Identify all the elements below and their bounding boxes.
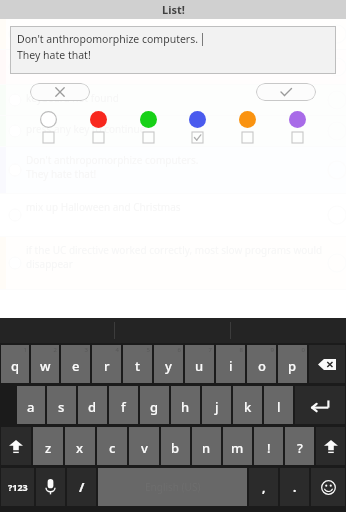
staticText: 6 — [177, 346, 181, 354]
staticText: 9 — [270, 346, 274, 354]
staticText: l — [277, 398, 281, 416]
button[interactable]: Shift — [316, 427, 345, 465]
staticText: , — [262, 479, 266, 495]
button[interactable]: 7 — [185, 345, 214, 383]
button[interactable]: Colour option 4 — [187, 111, 208, 143]
button[interactable]: c — [97, 427, 127, 465]
button[interactable]: s — [47, 386, 76, 424]
button[interactable]: 8 — [216, 345, 245, 383]
staticText: Don't anthropomorphize computers. — [17, 32, 199, 46]
staticText: o — [258, 357, 266, 375]
staticText: List! — [162, 2, 185, 17]
button[interactable]: v — [129, 427, 159, 465]
button[interactable]: 1 — [1, 345, 29, 383]
button[interactable]: 4 — [92, 345, 121, 383]
button[interactable]: f — [109, 386, 138, 424]
button[interactable]: Cancel — [30, 83, 90, 101]
staticText: d — [88, 398, 97, 416]
button[interactable]: k — [233, 386, 262, 424]
staticText: They hate that! — [17, 48, 91, 62]
button[interactable]: x — [65, 427, 95, 465]
button[interactable]: d — [78, 386, 107, 424]
staticText: c — [109, 439, 116, 457]
button[interactable]: j — [202, 386, 231, 424]
staticText: 0 — [301, 346, 305, 354]
staticText: t — [135, 357, 140, 375]
button[interactable]: h — [171, 386, 200, 424]
button[interactable]: 0 — [278, 345, 307, 383]
button[interactable]: Confirm — [256, 83, 316, 101]
button[interactable]: Colour option 2 — [88, 111, 109, 143]
staticText: i — [229, 357, 233, 375]
button[interactable]: Backspace — [309, 345, 345, 383]
button[interactable]: ? — [285, 427, 314, 465]
staticText: p — [288, 357, 297, 375]
staticText: w — [40, 357, 51, 375]
button[interactable]: a — [17, 386, 45, 424]
staticText: h — [181, 398, 190, 416]
button[interactable]: Colour option 5 — [237, 111, 258, 143]
button[interactable]: Shift — [1, 427, 31, 465]
staticText: k — [244, 398, 252, 416]
button[interactable]: , — [249, 468, 278, 506]
button[interactable]: 6 — [154, 345, 183, 383]
button[interactable]: Don't anthropomorphize computers. — [10, 26, 336, 74]
button[interactable]: / — [67, 468, 96, 506]
button[interactable]: 2 — [31, 345, 59, 383]
button[interactable]: Colour option 6 — [287, 111, 308, 143]
staticText: r — [104, 357, 110, 375]
button[interactable]: l — [264, 386, 293, 424]
staticText: 1 — [23, 346, 27, 354]
staticText: . — [293, 479, 297, 495]
staticText: b — [171, 439, 180, 457]
staticText: g — [150, 398, 159, 416]
button[interactable]: keyboard not found — [0, 85, 346, 115]
button[interactable]: ! — [254, 427, 283, 465]
staticText: a — [27, 398, 35, 416]
button[interactable]: 3 — [61, 345, 90, 383]
staticText: press any key to continue — [26, 122, 146, 136]
button[interactable]: Voice input — [36, 468, 65, 506]
button[interactable]: b — [161, 427, 190, 465]
staticText: keyboard not found — [26, 91, 119, 105]
staticText: ! — [267, 439, 271, 457]
button[interactable]: press any key to continue — [0, 116, 346, 146]
button[interactable]: 5 — [123, 345, 152, 383]
button[interactable]: m — [223, 427, 252, 465]
staticText: s — [58, 398, 65, 416]
button[interactable]: Bing is not Google — [0, 19, 346, 49]
button[interactable]: n — [192, 427, 221, 465]
staticText: x — [76, 439, 84, 457]
button[interactable]: g — [140, 386, 169, 424]
staticText: y — [165, 357, 172, 375]
staticText: go to the butcher shop and buy a kiro of… — [26, 56, 242, 70]
button[interactable]: z — [33, 427, 63, 465]
button[interactable]: 9 — [247, 345, 276, 383]
button[interactable]: Enter — [295, 386, 345, 424]
button[interactable]: Colour option 1 — [38, 111, 59, 143]
button[interactable]: Colour option 3 — [138, 111, 159, 143]
staticText: 3 — [84, 346, 88, 354]
button[interactable]: . — [280, 468, 309, 506]
button[interactable]: Emoji — [311, 468, 345, 506]
staticText: ?123 — [8, 481, 28, 493]
button[interactable]: go to the butcher shop and buy a kiro of… — [0, 50, 346, 84]
button[interactable]: ?123 — [1, 468, 34, 506]
staticText: ? — [297, 439, 303, 457]
staticText: q — [11, 357, 20, 375]
staticText: e — [72, 357, 80, 375]
staticText: disappear — [26, 257, 73, 271]
staticText: / — [79, 478, 85, 496]
